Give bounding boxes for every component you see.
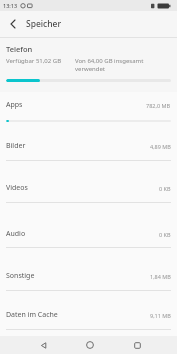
button[interactable]: Audio	[0, 220, 177, 248]
button[interactable]	[80, 336, 99, 354]
staticText: Verfügbar 51,02 GB	[6, 57, 62, 65]
button[interactable]: Bilder	[0, 132, 177, 160]
button[interactable]: Speicher	[0, 11, 177, 37]
staticText: Bilder	[6, 141, 26, 151]
button[interactable]: Daten im Cache	[0, 301, 177, 329]
button[interactable]	[34, 336, 53, 354]
button[interactable]: Apps	[0, 91, 177, 119]
button[interactable]: Videos	[0, 174, 177, 202]
staticText: 1,84 MB	[150, 273, 171, 280]
staticText: Daten im Cache	[6, 310, 58, 320]
button[interactable]	[128, 336, 147, 354]
staticText: 13:13	[3, 2, 18, 9]
staticText: Sonstige	[6, 271, 35, 281]
staticText: Speicher	[26, 18, 62, 30]
staticText: 4,89 MB	[150, 143, 171, 150]
staticText: Audio	[6, 229, 26, 239]
button[interactable]: Sonstige	[0, 262, 177, 290]
staticText: 782,0 MB	[146, 102, 171, 109]
staticText: Apps	[6, 100, 23, 110]
staticText: 9,11 MB	[150, 312, 171, 319]
staticText: 0 KB	[159, 185, 171, 192]
staticText: Telefon	[6, 44, 33, 54]
staticText: 0 KB	[159, 231, 171, 238]
staticText: Von 64,00 GB insgesamt verwendet	[75, 57, 144, 73]
staticText: Videos	[6, 183, 28, 193]
